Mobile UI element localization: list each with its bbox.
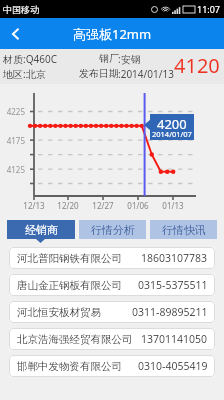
staticText: 0315-5375511 [138,278,208,292]
staticText: 01/13 [159,200,187,211]
staticText: 4125 [0,164,25,175]
staticText: 地区:北京 [3,67,46,81]
staticText: 4225 [0,106,25,117]
staticText: 河北恒安板材贸易 [17,306,101,319]
button[interactable]: 河北恒安板材贸易 [9,301,215,323]
button[interactable]: Back [0,18,31,49]
button[interactable]: 唐山金正钢板有限公司 [9,274,215,296]
staticText: 12/27 [89,200,117,211]
button[interactable]: 邯郸中发物资有限公司 [9,355,215,377]
staticText: 4120 [174,52,220,79]
staticText: 行情分析 [91,223,135,237]
staticText: 唐山金正钢板有限公司 [17,279,122,292]
staticText: :2014/01/13 [118,67,174,81]
staticText: 发布日期 [58,67,119,80]
staticText: 0310-4055419 [138,359,208,373]
staticText: 经销商 [25,223,58,237]
staticText: 18603107783 [141,251,208,265]
staticText: 4175 [0,135,25,146]
button[interactable]: 行情分析 [79,220,146,239]
staticText: 0311-89895211 [132,305,208,319]
button[interactable]: 河北普阳钢铁有限公司 [9,247,215,269]
button[interactable]: 行情快讯 [150,220,217,239]
staticText: 河北普阳钢铁有限公司 [17,252,122,265]
staticText: 材质:Q460C [3,52,57,66]
staticText: 钢厂 [58,52,119,65]
staticText: 中国移动 [3,4,39,15]
staticText: :安钢 [118,52,141,66]
staticText: 11:07 [197,3,221,15]
staticText: 行情快讯 [162,223,206,237]
staticText: 2014/01/07 [152,129,192,139]
staticText: 01/06 [124,200,152,211]
staticText: 邯郸中发物资有限公司 [17,360,122,373]
button[interactable]: 北京浩海强经贸有限公司 [9,328,215,350]
staticText: 高强板12mm [73,25,152,43]
staticText: 12/20 [54,200,82,211]
staticText: 13701141050 [141,332,208,346]
button[interactable]: 经销商 [7,220,75,239]
staticText: 4200 [157,115,187,133]
staticText: 12/13 [20,200,48,211]
staticText: 北京浩海强经贸有限公司 [17,333,133,346]
